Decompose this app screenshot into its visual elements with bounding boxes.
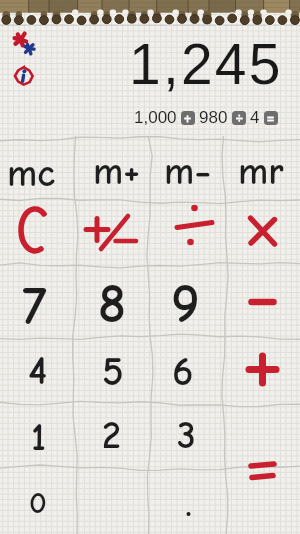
button[interactable]: 9 [148, 271, 223, 335]
button[interactable]: + [181, 111, 195, 125]
button[interactable] [150, 203, 225, 266]
button[interactable]: mr [223, 140, 298, 204]
staticText: 4 [28, 347, 48, 394]
button[interactable] [0, 203, 75, 266]
staticText: mr [238, 150, 284, 194]
staticText: 1 [31, 416, 46, 460]
button[interactable]: 7 [0, 273, 72, 337]
button[interactable]: ÷ [232, 111, 246, 125]
staticText: + [184, 112, 192, 125]
button[interactable]: mc [0, 142, 69, 206]
staticText: 4 [250, 108, 260, 127]
button[interactable]: 5 [75, 339, 150, 403]
staticText: 3 [177, 414, 196, 458]
button[interactable]: = [264, 111, 278, 125]
button[interactable]: m− [150, 140, 225, 204]
button[interactable]: 0 [0, 471, 75, 534]
button[interactable] [225, 404, 300, 534]
staticText: m+ [93, 150, 140, 194]
button[interactable]: 6 [145, 339, 220, 403]
staticText: mc [7, 152, 56, 196]
staticText: 980 [199, 108, 228, 127]
button[interactable] [13, 65, 35, 87]
staticText: 7 [22, 274, 47, 337]
staticText: 6 [172, 348, 194, 395]
button[interactable] [225, 203, 300, 266]
staticText: 5 [102, 348, 124, 395]
staticText: = [267, 112, 275, 125]
button[interactable]: m+ [79, 140, 154, 204]
staticText: 1,245 [129, 32, 283, 96]
staticText: 8 [98, 272, 127, 335]
button[interactable]: 1 [1, 406, 76, 470]
button[interactable]: 4 [0, 338, 75, 402]
staticText: 9 [171, 272, 200, 335]
button[interactable]: 8 [75, 271, 150, 335]
staticText: m− [164, 150, 212, 194]
staticText: 0 [29, 485, 47, 521]
staticText: 2 [102, 414, 121, 458]
button[interactable] [75, 203, 150, 266]
staticText: 1,000 [134, 108, 177, 127]
button[interactable] [225, 337, 300, 404]
button[interactable] [14, 33, 36, 57]
button[interactable]: 2 [74, 404, 149, 468]
button[interactable] [225, 266, 300, 337]
staticText: ÷ [236, 112, 243, 125]
button[interactable]: 3 [149, 404, 224, 468]
button[interactable] [150, 468, 225, 534]
